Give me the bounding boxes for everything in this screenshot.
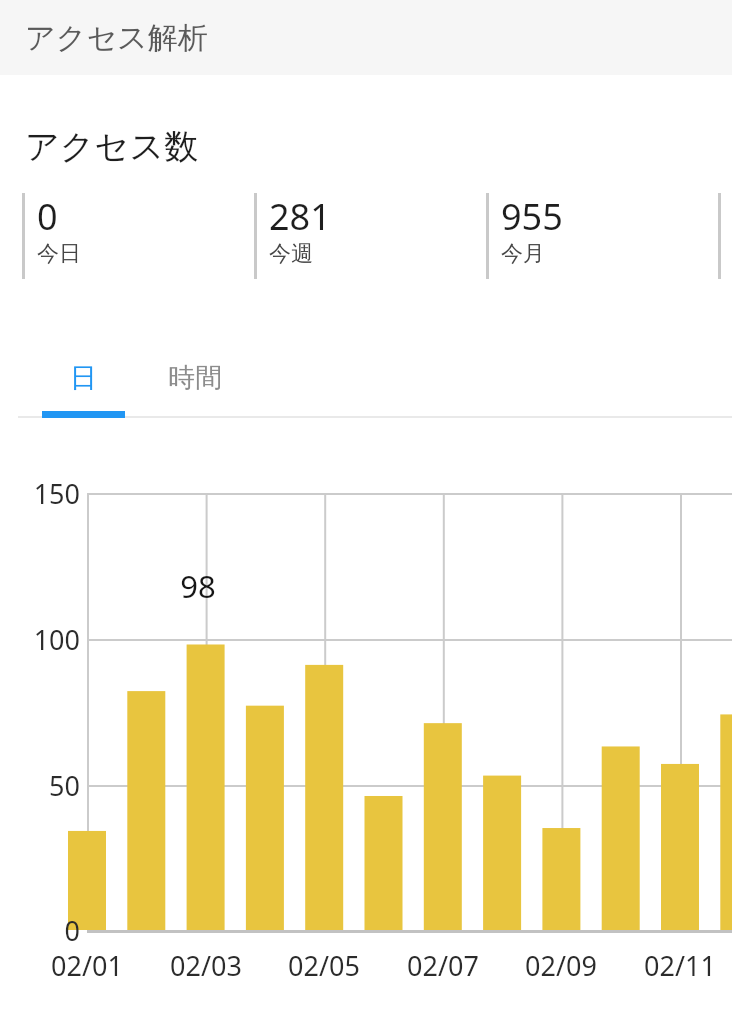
- staticText: 今日: [37, 240, 81, 268]
- staticText: 02/09: [525, 947, 597, 984]
- staticText: 281: [269, 192, 331, 241]
- staticText: 02/05: [288, 947, 360, 984]
- staticText: 02/11: [644, 947, 716, 984]
- staticText: 955: [501, 192, 563, 241]
- button[interactable]: 0: [37, 190, 253, 282]
- staticText: 今週: [269, 240, 313, 268]
- staticText: アクセス解析: [25, 19, 208, 57]
- staticText: 02/01: [51, 947, 123, 984]
- staticText: 50: [49, 767, 80, 804]
- staticText: 0: [37, 192, 58, 241]
- staticText: 02/03: [170, 947, 242, 984]
- button[interactable]: アクセス解析: [0, 0, 732, 75]
- staticText: 100: [33, 621, 80, 658]
- button[interactable]: 281: [269, 190, 485, 282]
- staticText: 時間: [168, 361, 222, 395]
- staticText: 日: [70, 361, 97, 395]
- staticText: 150: [33, 475, 80, 512]
- staticText: 0: [64, 912, 80, 949]
- staticText: アクセス数: [25, 125, 199, 168]
- button[interactable]: 日: [42, 345, 125, 411]
- staticText: 今月: [501, 240, 545, 268]
- staticText: 98: [180, 565, 216, 605]
- button[interactable]: 時間: [140, 345, 250, 411]
- staticText: 02/07: [407, 947, 479, 984]
- button[interactable]: 955: [501, 190, 717, 282]
